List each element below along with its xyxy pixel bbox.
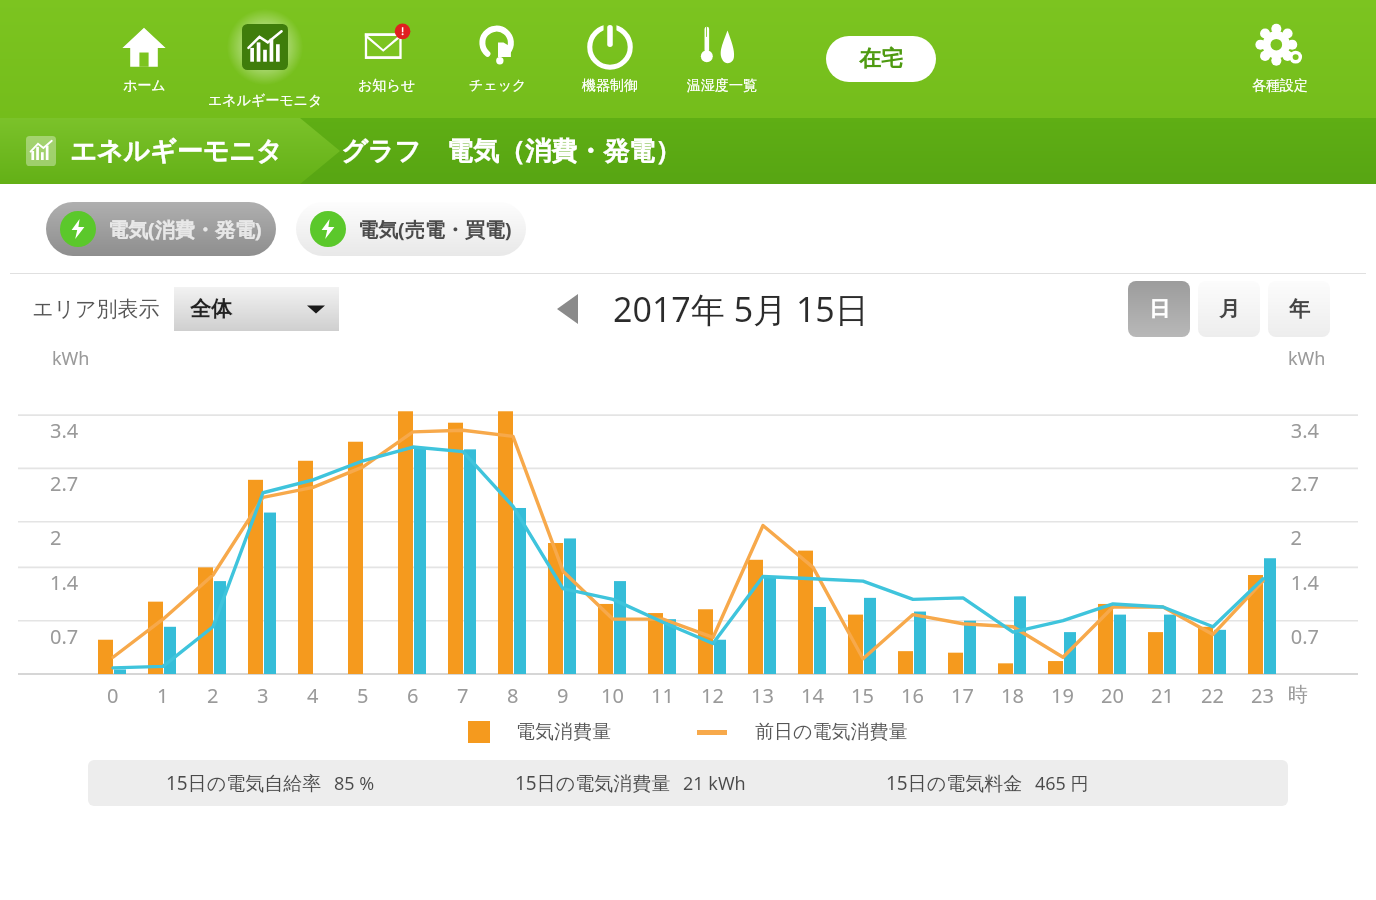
staticText: 15日の電気料金 [886, 770, 1023, 796]
staticText: 22 [1201, 682, 1224, 709]
staticText: 0 [107, 682, 119, 709]
staticText: 電気(消費・発電) [108, 216, 262, 243]
button[interactable]: 月 [1198, 281, 1260, 337]
staticText: 電気消費量 [516, 720, 611, 744]
staticText: 16 [901, 682, 924, 709]
staticText: 17 [951, 682, 974, 709]
staticText: 日 [1149, 296, 1170, 322]
other: 温湿度一覧 [699, 24, 745, 70]
staticText: 1.4 [1290, 569, 1319, 596]
button[interactable]: 全体 [174, 287, 339, 331]
button[interactable]: ホーム [88, 0, 200, 118]
staticText: kWh [1288, 346, 1326, 371]
staticText: エリア別表示 [32, 296, 160, 322]
button[interactable]: 電気(消費・発電) [60, 202, 262, 256]
button[interactable]: 電気(売電・買電) [310, 202, 512, 256]
staticText: 15日の電気消費量 [515, 770, 671, 796]
staticText: 機器制御 [582, 77, 638, 95]
staticText: 2 [50, 524, 62, 551]
staticText: 電気(売電・買電) [358, 216, 512, 243]
staticText: 3.4 [50, 417, 79, 444]
staticText: 2.7 [50, 470, 79, 497]
staticText: 23 [1251, 682, 1274, 709]
staticText: エネルギーモニタ [208, 92, 323, 110]
button[interactable]: 在宅 [826, 36, 936, 82]
staticText: 2.7 [1290, 470, 1319, 497]
other: 機器制御 [587, 24, 633, 70]
staticText: 全体 [190, 296, 232, 322]
staticText: ホーム [123, 77, 166, 95]
staticText: 2 [207, 682, 219, 709]
staticText: 19 [1051, 682, 1074, 709]
button[interactable]: お知らせ [330, 0, 442, 118]
staticText: 時 [1288, 682, 1308, 707]
staticText: 各種設定 [1252, 77, 1308, 95]
other: 各種設定 [1257, 24, 1303, 70]
staticText: 3 [257, 682, 269, 709]
staticText: 1.4 [50, 569, 79, 596]
staticText: 6 [407, 682, 419, 709]
staticText: 3.4 [1290, 417, 1319, 444]
staticText: チェック [469, 77, 527, 95]
button[interactable]: 温湿度一覧 [666, 0, 778, 118]
staticText: 2 [1290, 524, 1302, 551]
button[interactable]: エネルギーモニタ [200, 0, 330, 118]
button[interactable]: チェック [442, 0, 554, 118]
staticText: 0.7 [1290, 623, 1319, 650]
staticText: 7 [457, 682, 469, 709]
staticText: 11 [651, 682, 674, 709]
button[interactable]: 各種設定 [1224, 0, 1336, 118]
staticText: 465 円 [1035, 771, 1089, 796]
staticText: 10 [601, 682, 624, 709]
staticText: 前日の電気消費量 [755, 720, 908, 744]
button[interactable]: 日 [1128, 281, 1190, 337]
staticText: 1 [157, 682, 169, 709]
other: チェック [475, 24, 521, 70]
staticText: 9 [557, 682, 569, 709]
staticText: 13 [751, 682, 774, 709]
staticText: エネルギーモニタ [70, 135, 283, 168]
staticText: 8 [507, 682, 519, 709]
staticText: 5 [357, 682, 369, 709]
staticText: 12 [701, 682, 724, 709]
staticText: 年 [1289, 296, 1310, 322]
staticText: 21 [1151, 682, 1174, 709]
button[interactable]: 年 [1268, 281, 1330, 337]
staticText: お知らせ [358, 77, 415, 95]
other: ホーム [121, 24, 167, 70]
staticText: 15 [851, 682, 874, 709]
staticText: 18 [1001, 682, 1024, 709]
staticText: 温湿度一覧 [687, 77, 757, 95]
staticText: kWh [52, 346, 90, 371]
button[interactable]: 機器制御 [554, 0, 666, 118]
staticText: グラフ [341, 135, 421, 168]
staticText: 0.7 [50, 623, 79, 650]
other: エネルギーモニタ [242, 24, 288, 70]
staticText: 21 kWh [683, 771, 746, 796]
other: お知らせ [363, 24, 409, 70]
staticText: 4 [307, 682, 319, 709]
button[interactable]: 前の日 [547, 287, 591, 331]
staticText: 2017年 5月 15日 [613, 286, 869, 332]
staticText: 月 [1219, 296, 1240, 322]
staticText: 15日の電気自給率 [166, 770, 322, 796]
staticText: 20 [1101, 682, 1124, 709]
staticText: 在宅 [859, 45, 903, 73]
staticText: 85 % [334, 771, 375, 796]
staticText: 14 [801, 682, 824, 709]
staticText: 電気（消費・発電） [447, 135, 681, 168]
